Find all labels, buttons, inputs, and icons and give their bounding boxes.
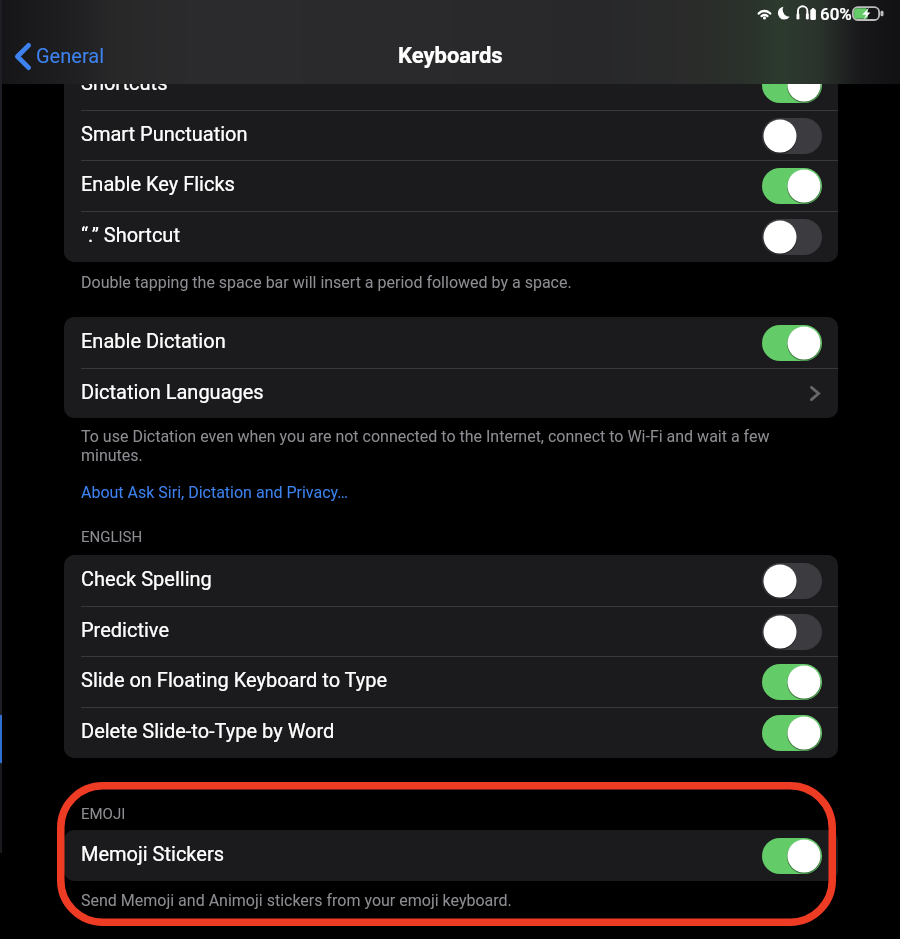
button[interactable]: Enable Dictation toggle <box>762 325 822 361</box>
button[interactable]: Smart Punctuation <box>64 110 838 161</box>
staticText: Send Memoji and Animoji stickers from yo… <box>81 891 814 910</box>
staticText: Delete Slide-to-Type by Word <box>81 719 335 742</box>
staticText: “.” Shortcut <box>81 223 180 246</box>
staticText: Smart Punctuation <box>81 122 248 145</box>
button[interactable]: Memoji Stickers <box>64 830 838 881</box>
button[interactable]: Check Spelling toggle <box>762 563 822 599</box>
staticText: To use Dictation even when you are not c… <box>81 427 814 465</box>
staticText: 60% <box>820 4 852 24</box>
button[interactable]: Shortcuts toggle <box>762 67 822 103</box>
button[interactable]: Back <box>15 43 31 70</box>
button[interactable]: Enable Key Flicks <box>64 160 838 211</box>
staticText: General <box>36 44 105 67</box>
button[interactable]: Predictive toggle <box>762 614 822 650</box>
button[interactable]: Shortcuts <box>64 59 838 110</box>
staticText: EMOJI <box>81 805 126 823</box>
button[interactable]: “.” Shortcut toggle <box>762 219 822 255</box>
button[interactable]: Smart Punctuation toggle <box>762 118 822 154</box>
staticText: Enable Key Flicks <box>81 172 235 195</box>
button[interactable]: Memoji Stickers toggle <box>762 838 822 874</box>
staticText: About Ask Siri, Dictation and Privacy… <box>81 483 349 502</box>
staticText: ENGLISH <box>81 528 143 546</box>
button[interactable]: Delete Slide-to-Type by Word <box>64 707 838 758</box>
staticText: Memoji Stickers <box>81 842 225 865</box>
staticText: Predictive <box>81 618 169 641</box>
staticText: Enable Dictation <box>81 329 226 352</box>
button[interactable]: Check Spelling <box>64 555 838 606</box>
button[interactable]: About Ask Siri, Dictation and Privacy… <box>81 483 349 502</box>
button[interactable]: Dictation Languages <box>64 368 838 418</box>
staticText: Keyboards <box>398 43 503 69</box>
button[interactable]: Slide on Floating Keyboard to Type toggl… <box>762 664 822 700</box>
staticText: Slide on Floating Keyboard to Type <box>81 668 388 691</box>
button[interactable]: Slide on Floating Keyboard to Type <box>64 656 838 707</box>
button[interactable]: Delete Slide-to-Type by Word toggle <box>762 715 822 751</box>
staticText: Double tapping the space bar will insert… <box>81 273 814 292</box>
button[interactable]: General <box>36 44 105 67</box>
staticText: Shortcuts <box>81 71 168 94</box>
staticText: Check Spelling <box>81 567 212 590</box>
button[interactable]: Predictive <box>64 606 838 657</box>
button[interactable]: Enable Key Flicks toggle <box>762 168 822 204</box>
button[interactable]: “.” Shortcut <box>64 211 838 262</box>
button[interactable]: Enable Dictation <box>64 317 838 368</box>
staticText: Dictation Languages <box>81 380 264 403</box>
